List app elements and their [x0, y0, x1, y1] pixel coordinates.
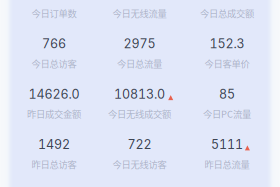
button[interactable]: 今日无线流量: [0, 0, 280, 187]
button[interactable]: 昨日总流量: [0, 0, 280, 187]
button[interactable]: 今日客单价: [0, 0, 280, 187]
staticText: 5111: [211, 137, 243, 152]
staticText: 今日无线流量: [112, 6, 166, 20]
staticText: 766: [42, 36, 66, 51]
staticText: 14626.0: [28, 86, 79, 102]
button[interactable]: 今日无线访客: [0, 0, 280, 187]
staticText: 2975: [123, 36, 155, 51]
staticText: 今日总流量: [117, 57, 162, 70]
staticText: 1492: [38, 137, 70, 152]
staticText: 昨日总访客: [31, 157, 76, 171]
staticText: 今日PC流量: [203, 107, 251, 120]
staticText: 昨日成交金额: [27, 107, 81, 120]
button[interactable]: 今日总流量: [0, 0, 280, 187]
staticText: 今日无线成交额: [108, 107, 171, 120]
staticText: 今日无线访客: [112, 157, 166, 171]
button[interactable]: 今日无线成交额: [0, 0, 280, 187]
staticText: 85: [219, 86, 235, 102]
button[interactable]: 今日订单数: [0, 0, 280, 187]
button[interactable]: 今日总成交额: [0, 0, 280, 187]
staticText: 722: [127, 137, 151, 152]
button[interactable]: 昨日成交金额: [0, 0, 280, 187]
staticText: 10813.0: [114, 86, 165, 102]
button[interactable]: 今日总访客: [0, 0, 280, 187]
staticText: 今日总成交额: [200, 6, 254, 20]
staticText: 152.3: [209, 36, 244, 51]
staticText: 今日订单数: [31, 6, 76, 20]
staticText: 今日总访客: [31, 57, 76, 70]
staticText: 今日客单价: [204, 57, 249, 70]
button[interactable]: 昨日总访客: [0, 0, 280, 187]
staticText: 昨日总流量: [204, 157, 249, 171]
button[interactable]: 今日PC流量: [0, 0, 280, 187]
